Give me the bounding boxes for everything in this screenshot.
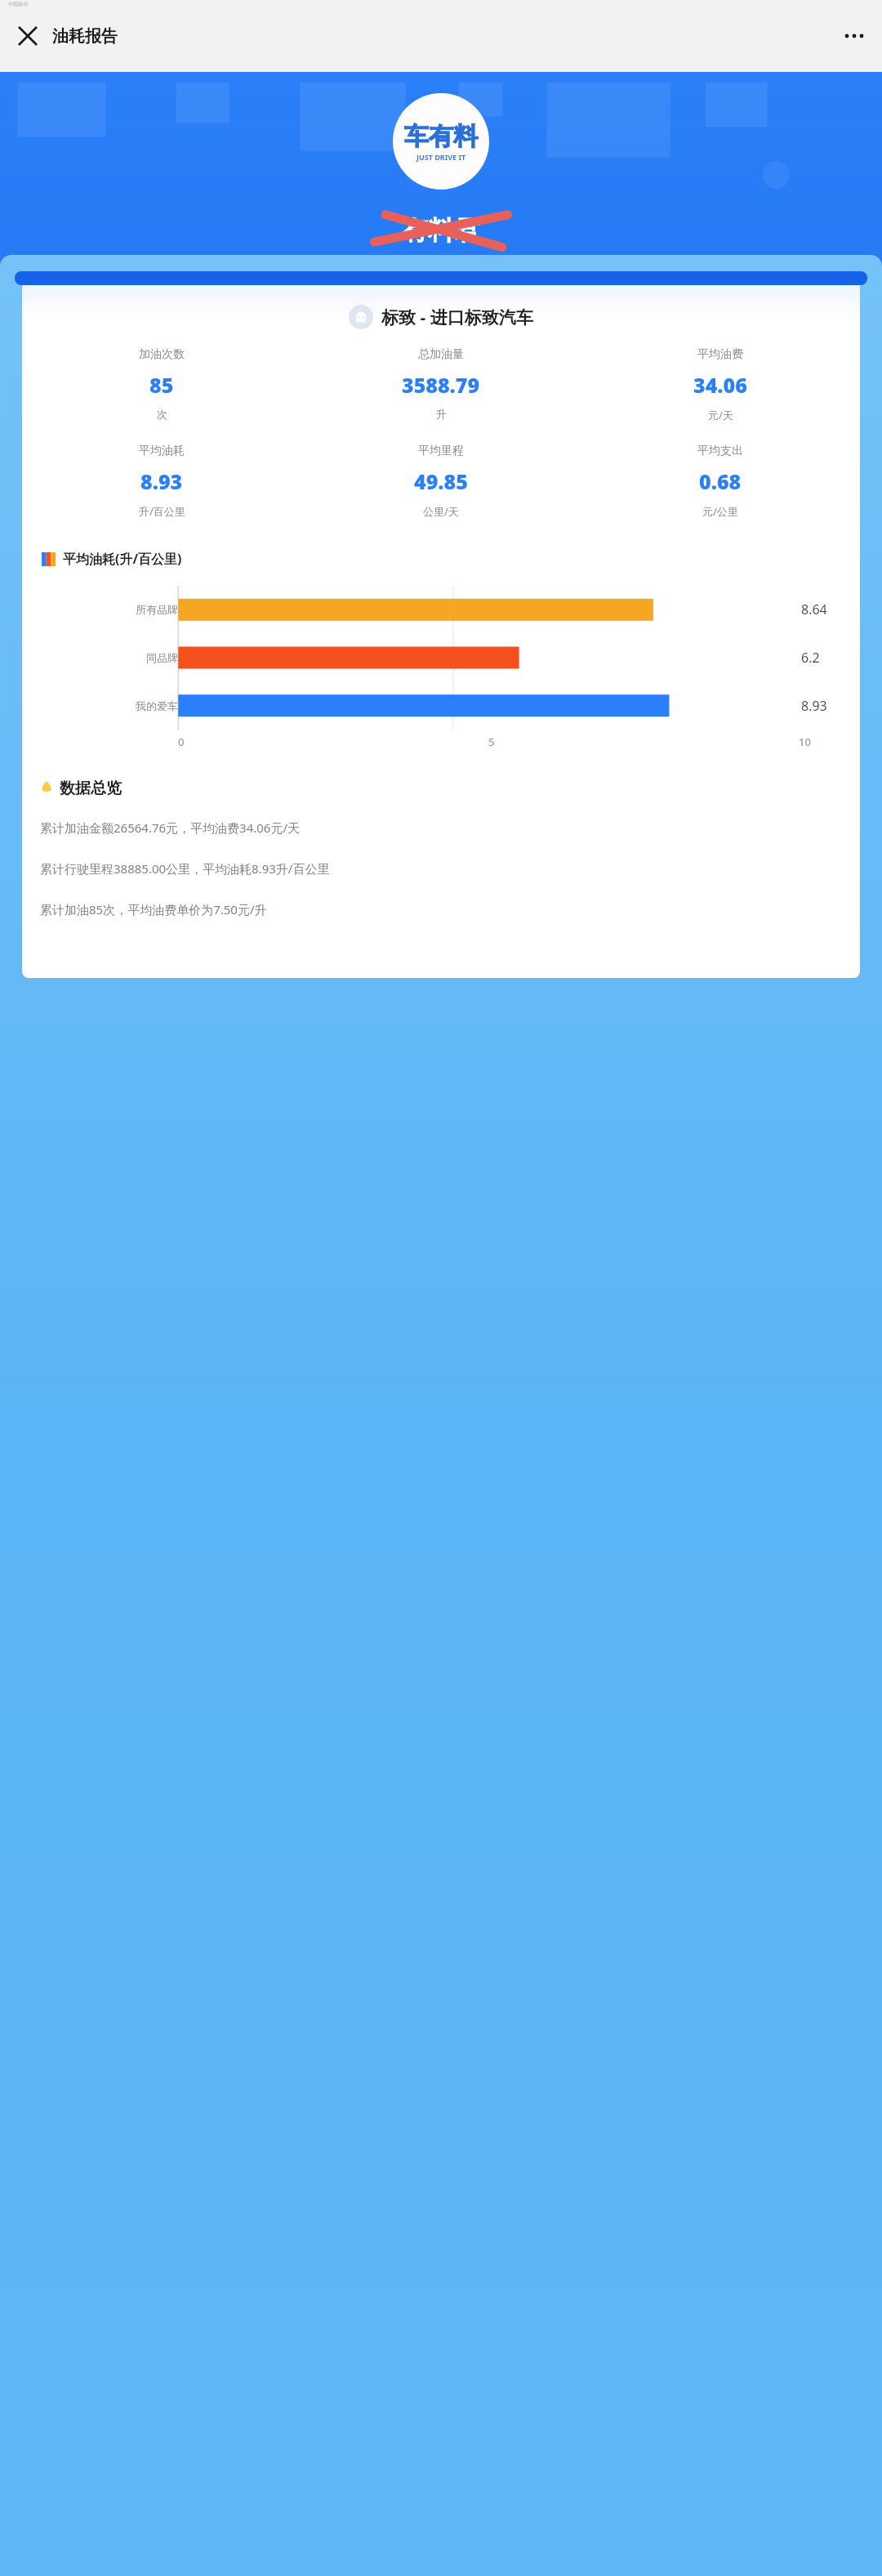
staticText: 有料君 [402,214,480,247]
staticText: 累计加油金额26564.76元，平均油费34.06元/天 [40,819,301,836]
staticText: 累计加油85次，平均油费单价为7.50元/升 [40,901,267,917]
button[interactable]: 标致 - 进口标致汽车 [22,305,860,329]
staticText: 公里/天 [423,504,459,519]
staticText: 平均里程 [418,444,464,458]
staticText: 5 [488,734,495,749]
button[interactable]: 加油次数 [22,347,301,421]
staticText: 油耗报告 [52,26,118,47]
button[interactable]: Close [10,18,46,54]
staticText: 所有品牌 [136,603,178,616]
staticText: 累计行驶里程38885.00公里，平均油耗8.93升/百公里 [40,860,330,877]
staticText: 中国移动 [8,1,28,7]
staticText: 我的爱车 [136,699,178,712]
staticText: 标致 - 进口标致汽车 [381,306,533,329]
staticText: 平均油耗(升/百公里) [63,550,182,568]
staticText: 平均油耗 [139,444,185,458]
staticText: 加油次数 [139,347,185,362]
staticText: 85 [149,371,174,399]
staticText: 34.06 [693,371,747,399]
staticText: 平均支出 [697,444,743,458]
staticText: 6.2 [801,649,820,667]
staticText: 平均油费 [697,347,743,362]
staticText: 总加油量 [418,347,464,362]
staticText: 元/天 [708,408,733,422]
staticText: 49.85 [414,467,468,495]
staticText: 数据总览 [60,779,122,798]
staticText: 次 [157,408,167,421]
staticText: 8.64 [801,600,827,618]
staticText: 3588.79 [402,371,480,399]
staticText: 10 [799,734,811,749]
staticText: 已坚持记录油耗85次,击败全国97.76%的车主 [319,268,563,284]
staticText: 升/百公里 [139,504,185,519]
button[interactable]: 平均油耗 [22,444,301,519]
staticText: 元/公里 [702,504,738,519]
button[interactable]: 平均油费 [581,347,860,422]
staticText: 同品牌 [146,651,178,664]
button[interactable]: More options [836,18,872,54]
staticText: 车有料 [404,121,478,152]
staticText: 0 [178,734,185,749]
staticText: 升 [436,408,447,421]
staticText: 8.93 [801,697,827,715]
staticText: JUST DRIVE IT [416,152,466,162]
staticText: 0.68 [699,467,742,495]
button[interactable]: 总加油量 [301,347,581,421]
staticText: 8.93 [140,467,183,495]
button[interactable]: 平均支出 [581,444,860,519]
button[interactable]: 平均里程 [301,444,581,519]
